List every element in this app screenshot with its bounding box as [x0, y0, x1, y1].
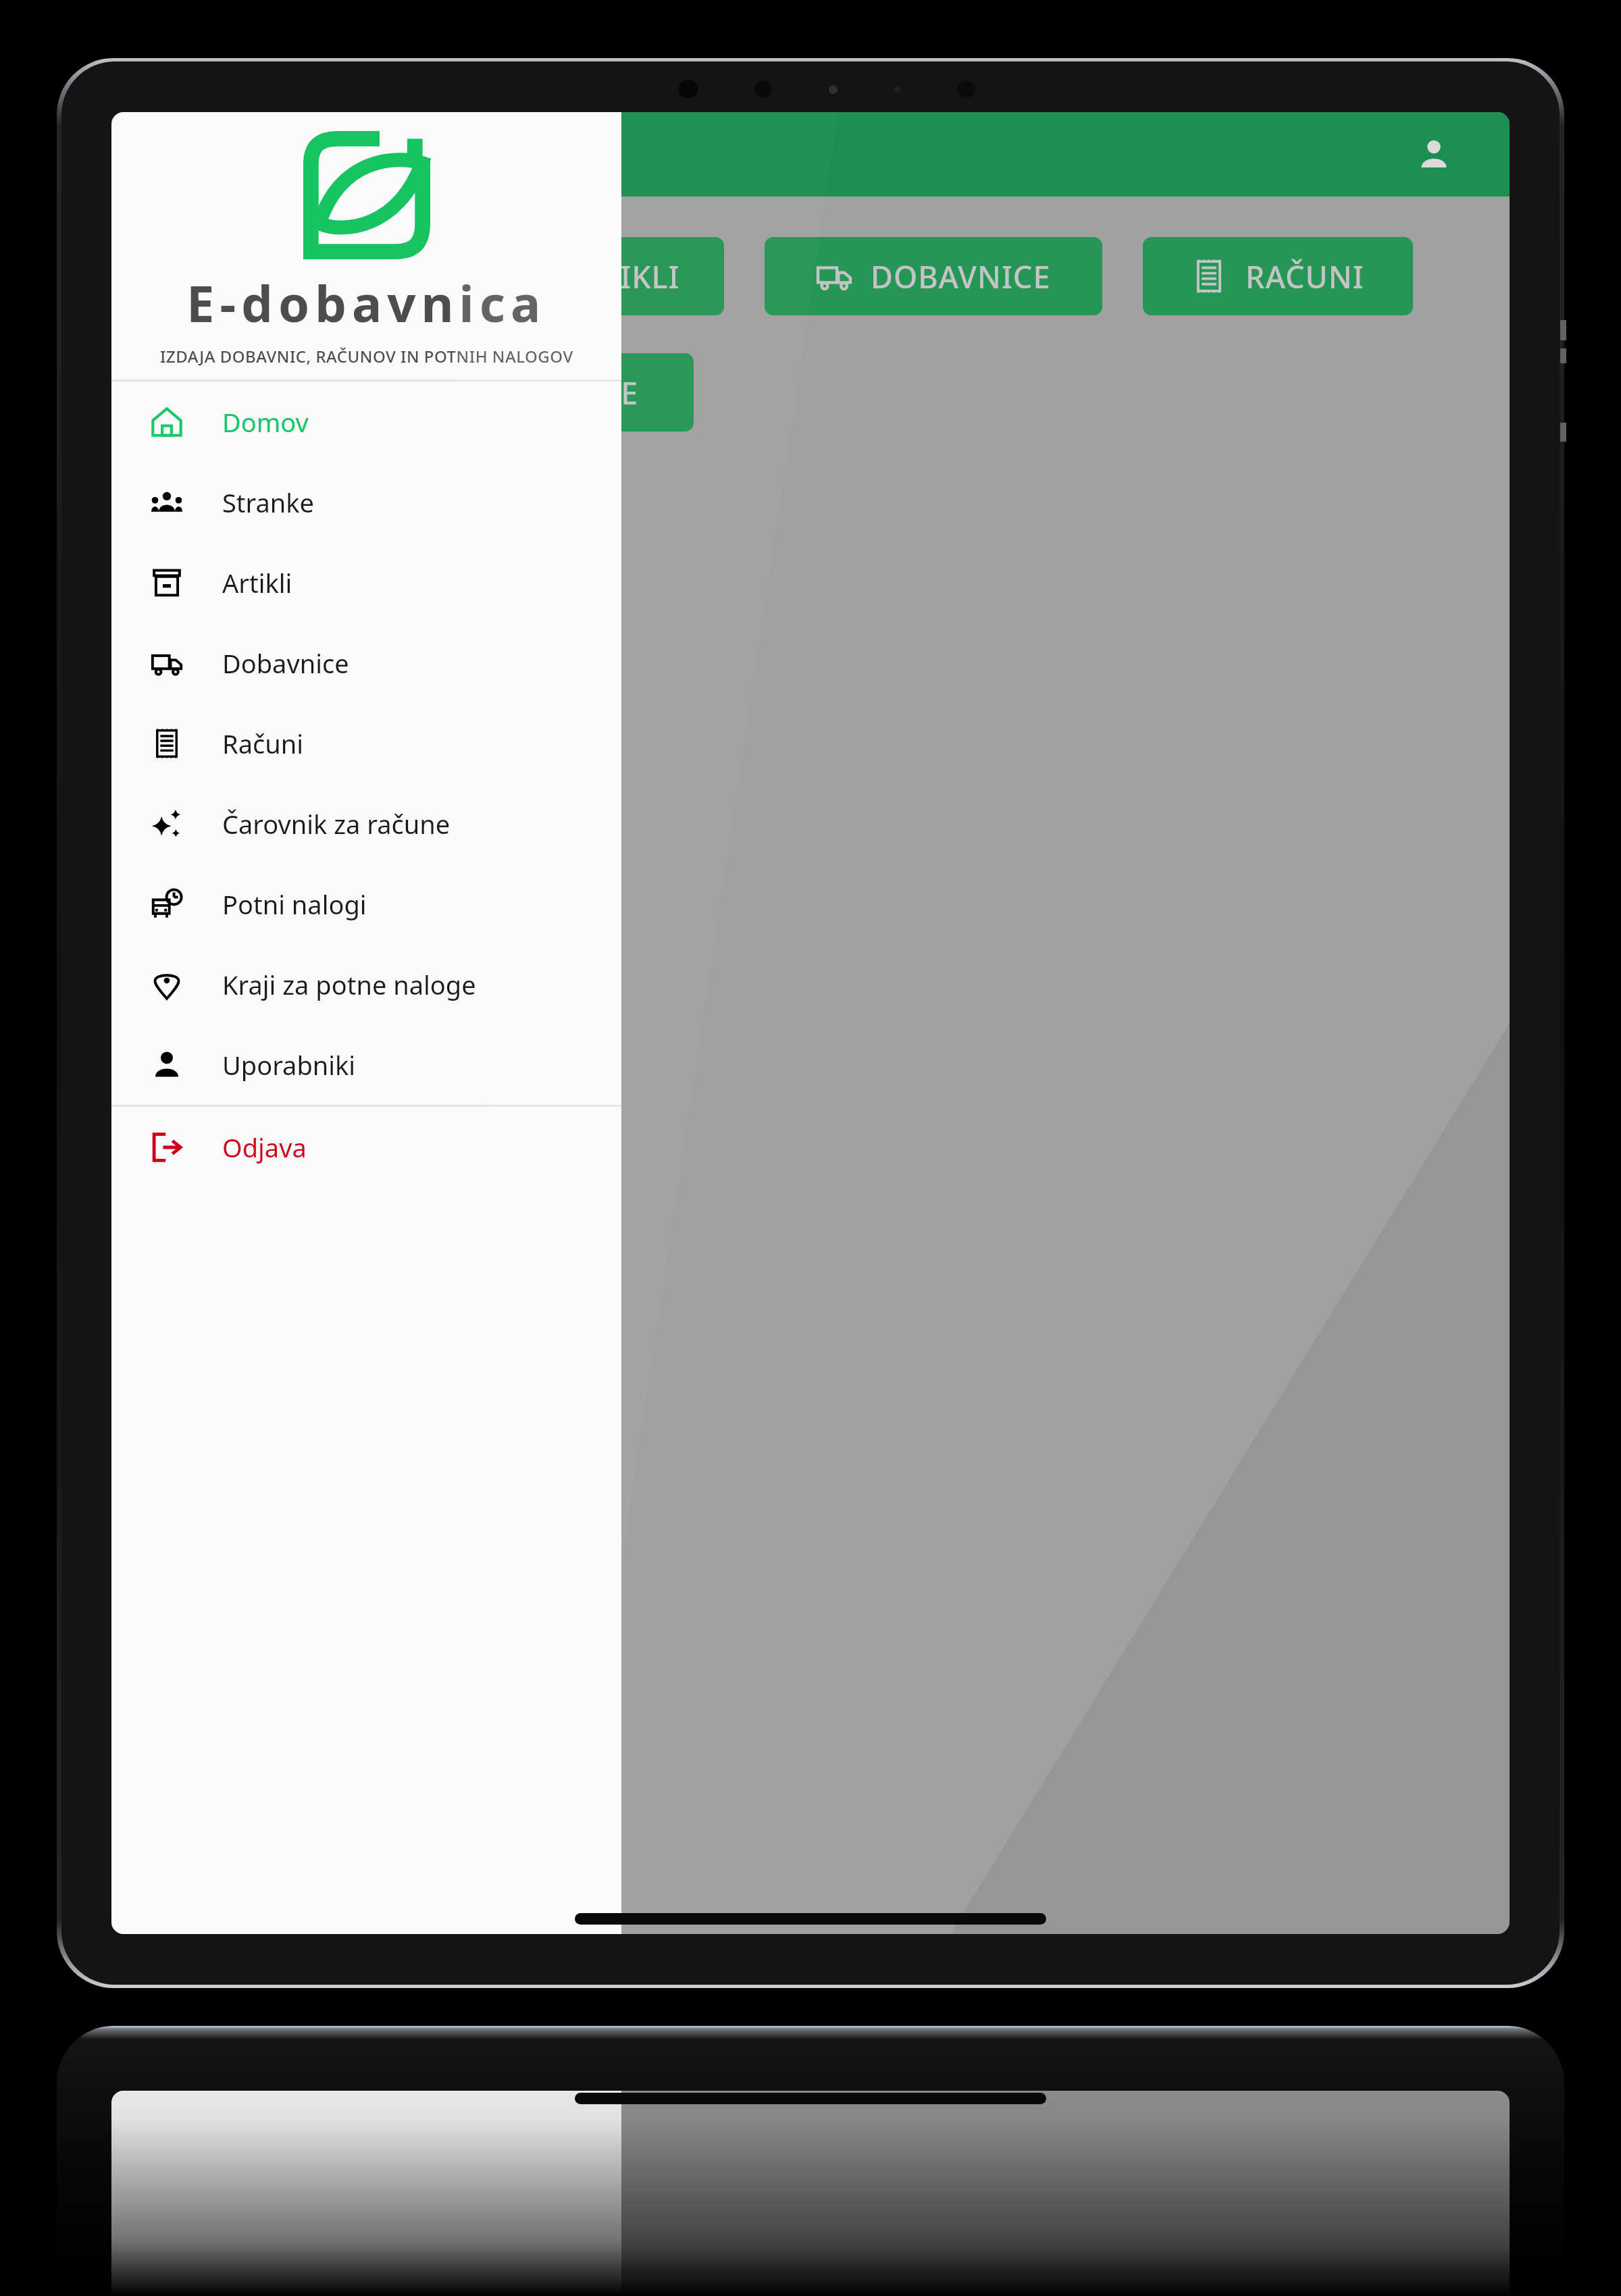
- button[interactable]: Stranke: [111, 462, 621, 542]
- button[interactable]: Uporabniki: [111, 1024, 621, 1105]
- button[interactable]: STRANKE: [153, 237, 423, 315]
- button[interactable]: Odjava: [111, 1107, 621, 1187]
- button[interactable]: Potni nalogi: [111, 864, 621, 944]
- staticText: Odjava: [222, 1130, 307, 1165]
- staticText: Domov: [222, 405, 309, 440]
- button[interactable]: Računi: [111, 703, 621, 783]
- staticText: Uporabniki: [222, 1047, 356, 1082]
- button[interactable]: Dobavnice: [111, 623, 621, 703]
- staticText: KRAJI ZA POTNE NALOGE: [263, 372, 639, 413]
- staticText: DOBAVNICE: [871, 256, 1051, 297]
- staticText: Dobavnice: [222, 646, 349, 681]
- staticText: Čarovnik za račune: [222, 806, 451, 841]
- button[interactable]: DOBAVNICE: [765, 237, 1102, 315]
- button[interactable]: ARTIKLI: [464, 237, 724, 315]
- button[interactable]: Profil: [1403, 124, 1465, 186]
- staticText: STRANKE: [247, 256, 384, 297]
- staticText: IZDAJA DOBAVNIC, RAČUNOV IN POTNIH NALOG…: [160, 345, 573, 367]
- staticText: Kraji za potne naloge: [222, 967, 476, 1002]
- staticText: Artikli: [222, 565, 292, 600]
- button[interactable]: Čarovnik za račune: [111, 783, 621, 864]
- button[interactable]: KRAJI ZA POTNE NALOGE: [153, 353, 694, 432]
- button[interactable]: RAČUNI: [1143, 237, 1413, 315]
- button[interactable]: Domov: [111, 382, 621, 462]
- button[interactable]: Artikli: [111, 542, 621, 623]
- staticText: E-dobavnica: [186, 269, 546, 337]
- button[interactable]: Kraji za potne naloge: [111, 944, 621, 1024]
- staticText: Stranke: [222, 485, 315, 520]
- staticText: Potni nalogi: [222, 887, 367, 922]
- staticText: ARTIKLI: [562, 256, 680, 297]
- staticText: Računi: [222, 726, 303, 761]
- button[interactable]: Profil: [111, 112, 1510, 197]
- staticText: RAČUNI: [1245, 256, 1364, 297]
